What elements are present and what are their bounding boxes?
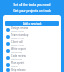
- staticText: Write report: [11, 47, 26, 51]
- button[interactable]: Ship release: [6, 68, 59, 72]
- button[interactable]: Code review: [6, 54, 59, 61]
- staticText: Friday: [11, 65, 18, 68]
- staticText: Today 14:00: [11, 44, 24, 47]
- button[interactable]: Plan sprint: [6, 61, 59, 68]
- button[interactable]: Write report: [6, 47, 59, 54]
- staticText: Get your projects on track: [3, 9, 61, 13]
- staticText: Add a new task: [23, 22, 42, 26]
- button[interactable]: Add a new task: [5, 21, 59, 26]
- staticText: Design review: [11, 26, 29, 30]
- staticText: Plan sprint: [11, 61, 25, 65]
- staticText: Team standup: [11, 33, 29, 37]
- staticText: Tomorrow: [11, 58, 23, 61]
- staticText: Set all the tasks you need: [3, 3, 61, 7]
- staticText: Ship release: [11, 68, 26, 72]
- button[interactable]: Design review: [6, 26, 59, 33]
- button[interactable]: Client call: [6, 40, 59, 47]
- staticText: Tomorrow: [11, 51, 23, 54]
- staticText: Today 11:30: [11, 37, 24, 40]
- staticText: Today 10:00: [11, 30, 24, 33]
- staticText: Client call: [11, 40, 23, 44]
- staticText: Code review: [11, 54, 26, 58]
- button[interactable]: Team standup: [6, 33, 59, 40]
